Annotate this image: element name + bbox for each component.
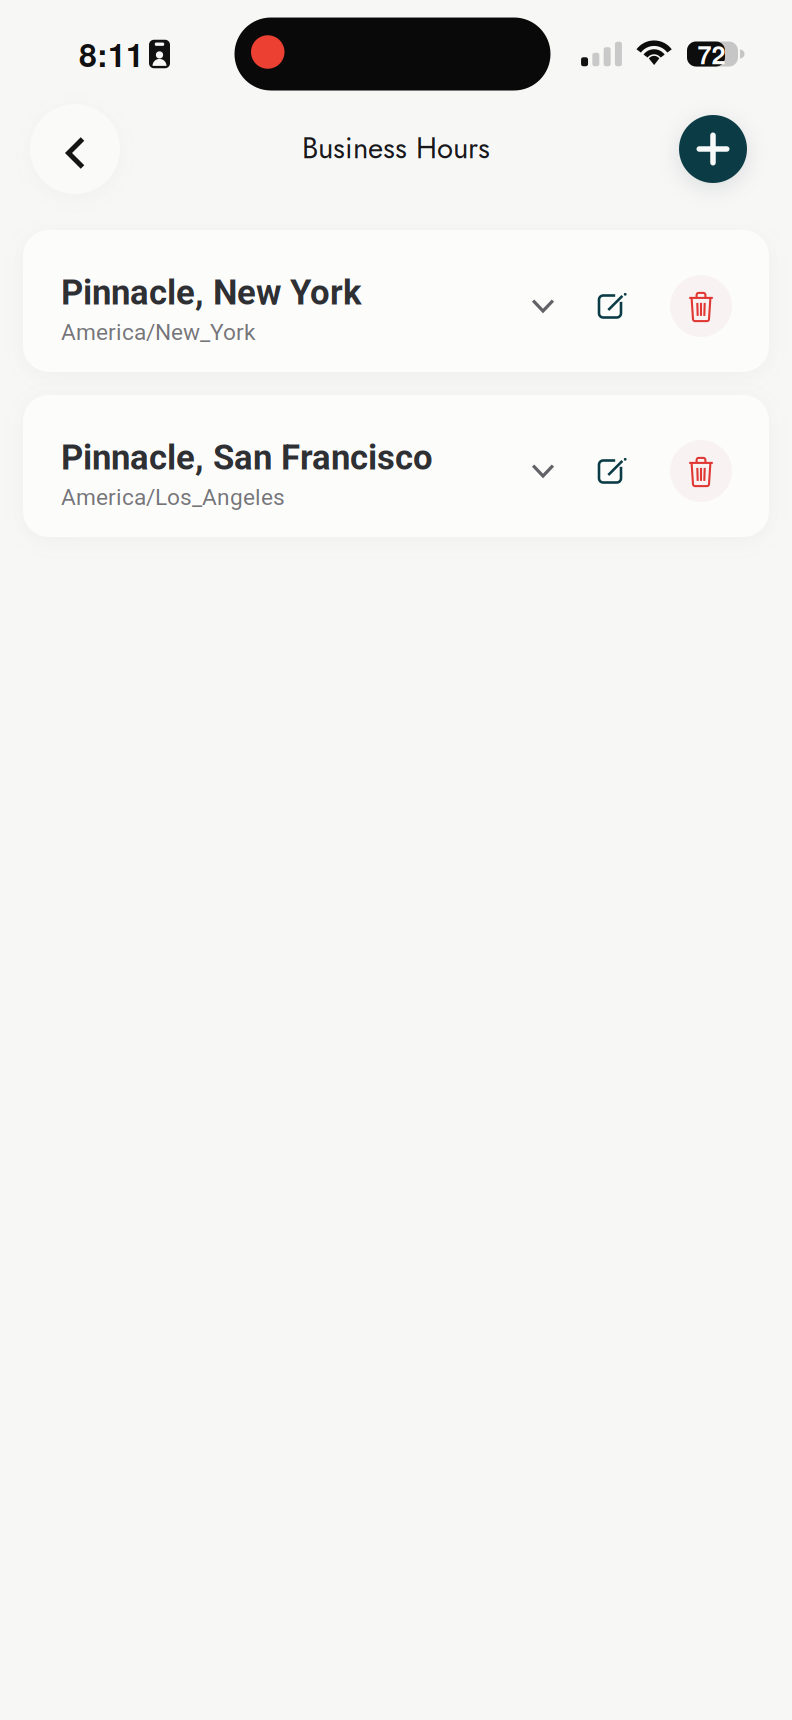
button[interactable]: Delete	[654, 270, 748, 342]
staticText: America/Los_Angeles	[61, 484, 285, 511]
button[interactable]: Back	[30, 104, 120, 194]
button[interactable]: Edit	[574, 435, 654, 507]
staticText: America/New_York	[61, 319, 255, 346]
staticText: Business Hours	[302, 127, 490, 169]
button[interactable]: Add location	[679, 115, 747, 183]
staticText: Pinnacle, San Francisco	[61, 437, 433, 478]
button[interactable]: Delete	[654, 435, 748, 507]
staticText: 8:11	[79, 31, 144, 77]
button[interactable]: Expand hours	[512, 270, 574, 342]
button[interactable]: Edit	[574, 270, 654, 342]
button[interactable]: Expand hours	[512, 435, 574, 507]
staticText: 72	[697, 36, 725, 72]
staticText: Pinnacle, New York	[61, 272, 362, 313]
